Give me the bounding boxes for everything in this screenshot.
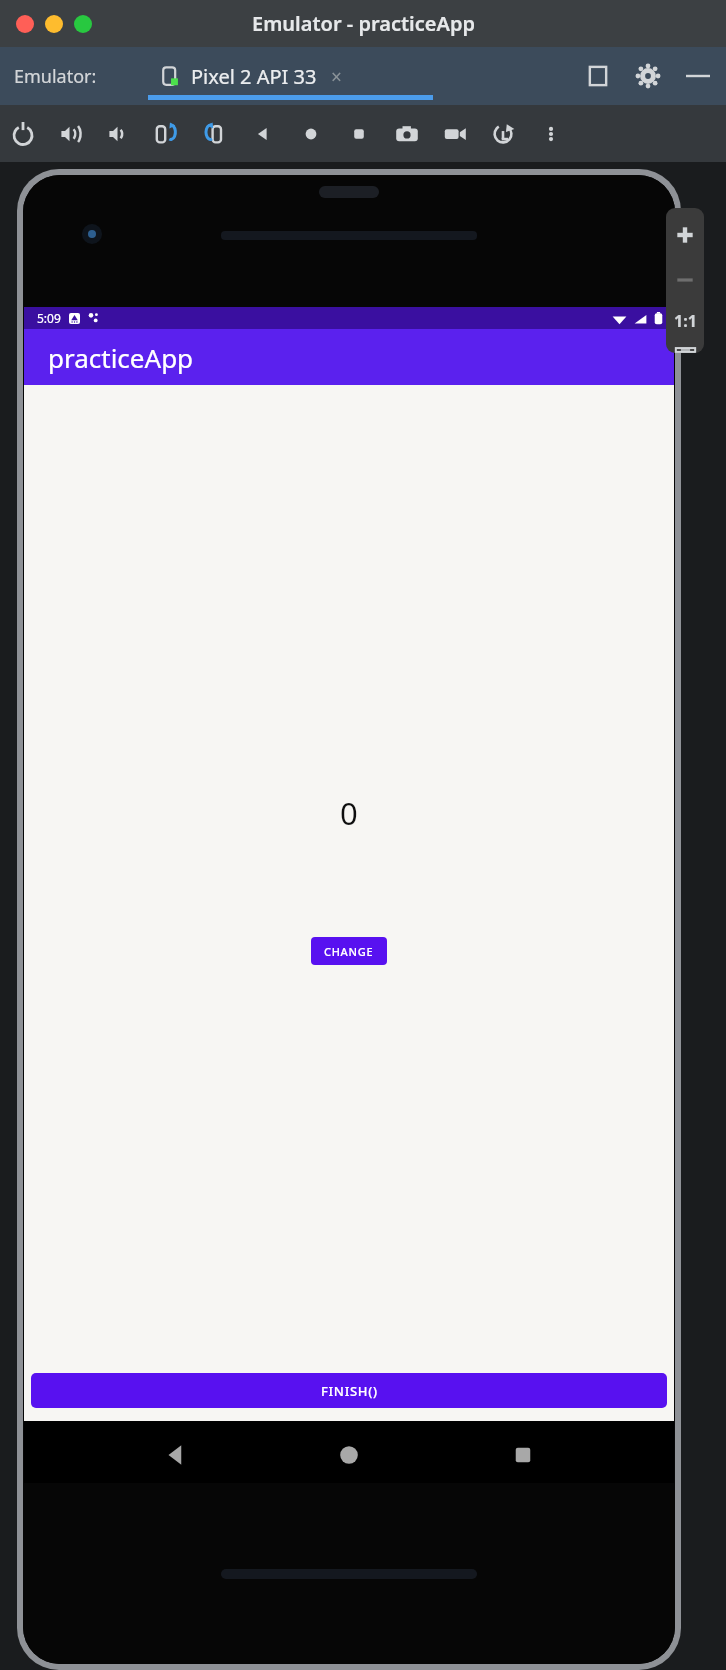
button[interactable]: Volume up	[56, 119, 86, 149]
button[interactable]: Take screenshot	[392, 119, 422, 149]
button[interactable]: Home	[327, 1433, 371, 1477]
button[interactable]: Settings	[636, 64, 660, 88]
button[interactable]: Zoom in	[673, 223, 697, 247]
button[interactable]: ×	[331, 64, 342, 90]
button[interactable]: Minimize	[686, 64, 710, 88]
staticText: CHANGE	[324, 944, 374, 959]
button[interactable]: Close window	[16, 15, 34, 33]
staticText: FINISH()	[321, 1382, 378, 1400]
button[interactable]: Record screen	[440, 119, 470, 149]
button[interactable]: Minimize window	[45, 15, 63, 33]
button[interactable]: More options	[536, 119, 566, 149]
button[interactable]: Volume down	[104, 119, 134, 149]
button[interactable]: CHANGE	[311, 937, 387, 965]
button[interactable]: Rotate left	[152, 119, 182, 149]
button[interactable]: Power	[8, 119, 38, 149]
staticText: Pixel 2 API 33	[191, 63, 317, 90]
button[interactable]: Actual size	[674, 310, 697, 332]
button[interactable]: Overview	[344, 119, 374, 149]
button[interactable]: Back	[154, 1433, 198, 1477]
button[interactable]: Rotate right	[200, 119, 230, 149]
staticText: practiceApp	[48, 340, 194, 375]
staticText: 0	[340, 792, 358, 834]
staticText: Emulator:	[14, 64, 97, 89]
button[interactable]: Recent apps	[501, 1433, 545, 1477]
button[interactable]: FINISH()	[31, 1373, 667, 1408]
button[interactable]: Zoom out	[673, 272, 697, 288]
staticText: 1:1	[674, 310, 697, 332]
button[interactable]: Dock window	[586, 64, 610, 88]
staticText: Emulator - practiceApp	[252, 10, 475, 37]
button[interactable]: Rotate history	[488, 119, 518, 149]
button[interactable]: Zoom window	[74, 15, 92, 33]
button[interactable]: Fit to window	[674, 347, 697, 353]
button[interactable]: Home	[296, 119, 326, 149]
staticText: 5:09	[37, 310, 61, 326]
button[interactable]: Back	[248, 119, 278, 149]
button[interactable]: Pixel 2 API 33	[160, 63, 342, 90]
